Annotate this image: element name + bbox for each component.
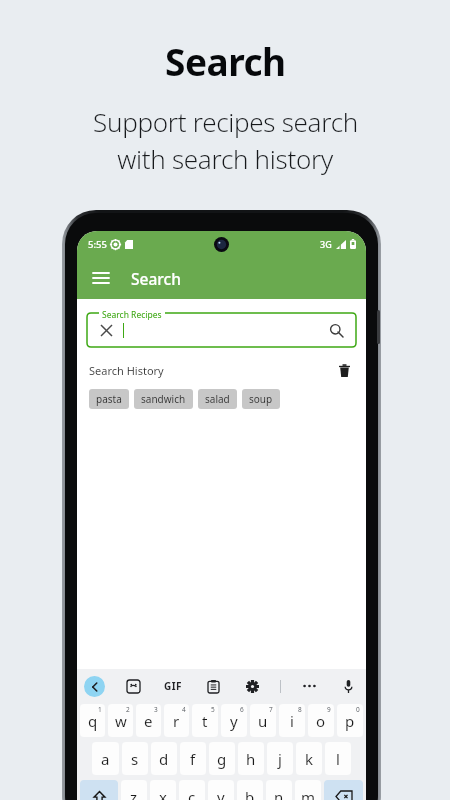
staticText: x: [159, 787, 167, 800]
staticText: w: [115, 711, 127, 731]
button[interactable]: pasta: [89, 389, 129, 409]
button[interactable]: u: [250, 704, 276, 737]
button[interactable]: Clipboard: [202, 675, 224, 697]
button[interactable]: l: [325, 742, 351, 775]
staticText: p: [345, 711, 355, 731]
staticText: u: [258, 711, 268, 731]
button[interactable]: Keyboard settings: [241, 675, 263, 697]
button[interactable]: d: [151, 742, 177, 775]
button[interactable]: Clear search: [96, 320, 116, 340]
button[interactable]: q: [80, 704, 105, 737]
button[interactable]: y: [221, 704, 247, 737]
button[interactable]: Search: [325, 319, 347, 341]
button[interactable]: Backspace: [324, 780, 363, 800]
staticText: 0: [356, 705, 360, 714]
button[interactable]: More options: [298, 675, 320, 697]
staticText: soup: [249, 392, 273, 406]
staticText: 8: [298, 705, 302, 714]
staticText: q: [88, 711, 98, 731]
staticText: salad: [205, 392, 230, 406]
button[interactable]: Back: [84, 676, 105, 697]
button[interactable]: b: [237, 780, 263, 800]
staticText: k: [305, 749, 314, 769]
button[interactable]: t: [192, 704, 218, 737]
staticText: Search: [165, 36, 286, 86]
button[interactable]: g: [209, 742, 235, 775]
staticText: sandwich: [141, 392, 186, 406]
staticText: m: [301, 787, 316, 800]
button[interactable]: Clear search: [87, 313, 356, 347]
button[interactable]: Open navigation menu: [83, 260, 119, 296]
staticText: pasta: [96, 392, 122, 406]
staticText: 7: [269, 705, 273, 714]
staticText: g: [217, 749, 227, 769]
staticText: 1: [98, 705, 102, 714]
staticText: l: [336, 749, 340, 769]
button[interactable]: k: [296, 742, 322, 775]
staticText: z: [130, 787, 138, 800]
staticText: i: [290, 711, 294, 731]
button[interactable]: f: [180, 742, 206, 775]
staticText: 9: [327, 705, 331, 714]
staticText: 5: [211, 705, 215, 714]
staticText: Search Recipes: [102, 309, 162, 321]
staticText: 3: [154, 705, 158, 714]
staticText: Search: [131, 268, 181, 289]
button[interactable]: i: [279, 704, 305, 737]
staticText: f: [190, 749, 196, 769]
button[interactable]: Stickers: [122, 675, 144, 697]
button[interactable]: n: [266, 780, 292, 800]
button[interactable]: x: [150, 780, 176, 800]
staticText: b: [245, 787, 255, 800]
staticText: n: [274, 787, 284, 800]
button[interactable]: a: [92, 742, 119, 775]
button[interactable]: Shift: [80, 780, 118, 800]
staticText: e: [144, 711, 153, 731]
button[interactable]: salad: [198, 389, 237, 409]
staticText: j: [278, 749, 282, 769]
staticText: 5:55: [88, 238, 107, 251]
button[interactable]: z: [121, 780, 147, 800]
staticText: h: [246, 749, 256, 769]
staticText: o: [316, 711, 326, 731]
staticText: 6: [240, 705, 244, 714]
button[interactable]: o: [308, 704, 334, 737]
staticText: t: [202, 711, 208, 731]
staticText: a: [101, 749, 110, 769]
staticText: 2: [126, 705, 130, 714]
button[interactable]: soup: [242, 389, 280, 409]
staticText: r: [173, 711, 180, 731]
button[interactable]: r: [164, 704, 189, 737]
button[interactable]: sandwich: [134, 389, 193, 409]
staticText: Search History: [89, 363, 164, 378]
button[interactable]: e: [136, 704, 161, 737]
button[interactable]: j: [267, 742, 293, 775]
button[interactable]: s: [122, 742, 148, 775]
button[interactable]: Clear search history: [332, 358, 356, 382]
button[interactable]: p: [337, 704, 363, 737]
button[interactable]: GIF: [161, 676, 185, 696]
staticText: c: [188, 787, 196, 800]
staticText: v: [217, 787, 225, 800]
staticText: 3G: [320, 238, 332, 250]
button[interactable]: c: [179, 780, 205, 800]
button[interactable]: v: [208, 780, 234, 800]
button[interactable]: Voice input: [337, 675, 359, 697]
staticText: with search history: [117, 141, 333, 176]
staticText: Support recipes search: [93, 104, 358, 139]
button[interactable]: w: [108, 704, 133, 737]
staticText: GIF: [164, 679, 182, 693]
staticText: s: [131, 749, 139, 769]
button[interactable]: h: [238, 742, 264, 775]
staticText: 4: [182, 705, 186, 714]
staticText: y: [230, 711, 238, 731]
staticText: d: [159, 749, 169, 769]
button[interactable]: m: [295, 780, 321, 800]
